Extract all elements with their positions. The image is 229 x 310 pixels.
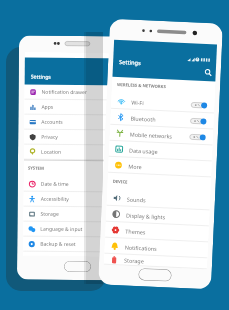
button[interactable]: Language & input [23, 221, 130, 237]
button[interactable]: Data usage [109, 141, 212, 161]
staticText: Data usage [129, 147, 212, 157]
staticText: WIRELESS & NETWORKS [117, 82, 166, 90]
staticText: Privacy [41, 134, 58, 141]
staticText: Settings [119, 58, 141, 67]
staticText: Settings [31, 73, 52, 80]
staticText: Themes [125, 227, 208, 238]
staticText: Notification drawer [41, 89, 88, 96]
staticText: Notifications [125, 243, 208, 254]
staticText: Display & lights [126, 211, 209, 222]
button[interactable] [191, 100, 206, 110]
button[interactable]: Accounts [24, 114, 131, 130]
staticText: Location [41, 149, 62, 156]
staticText: Bluetooth [130, 115, 191, 124]
button[interactable]: Location [24, 144, 131, 160]
button[interactable]: Home [138, 268, 172, 282]
button[interactable]: Themes [105, 222, 209, 242]
button[interactable]: Apps [24, 99, 131, 115]
staticText: Mobile networks [130, 131, 190, 140]
staticText: Backup & reset [40, 241, 76, 248]
button[interactable]: Privacy [24, 129, 131, 145]
staticText: DEVICE [113, 179, 128, 186]
button[interactable]: Date & time [24, 176, 131, 192]
staticText: Sounds [127, 195, 210, 206]
staticText: Accessibility [41, 196, 70, 203]
button[interactable]: Storage [23, 206, 130, 222]
button[interactable]: Backup & reset [23, 236, 130, 252]
button[interactable]: Storage [104, 254, 207, 269]
button[interactable]: Notification drawer [24, 84, 132, 100]
button[interactable] [190, 132, 205, 142]
button[interactable]: Mobile networks [110, 125, 213, 145]
staticText: SYSTEM [28, 166, 44, 172]
button[interactable] [190, 116, 206, 126]
button[interactable]: Sounds [107, 190, 210, 210]
button[interactable]: More [108, 157, 212, 177]
button[interactable]: Notifications [104, 238, 208, 258]
button[interactable]: Display & lights [106, 206, 209, 226]
button[interactable]: Bluetooth [110, 109, 214, 129]
staticText: Accounts [41, 119, 63, 126]
staticText: Apps [41, 104, 53, 111]
staticText: Storage [124, 256, 207, 267]
staticText: Language & input [40, 226, 82, 233]
staticText: Storage [40, 211, 60, 218]
button[interactable]: Search [202, 67, 213, 77]
button[interactable]: Accessibility [24, 191, 131, 207]
staticText: Date & time [41, 181, 69, 188]
button[interactable]: Home [64, 261, 91, 272]
button[interactable]: Wi-Fi [111, 93, 215, 113]
staticText: Wi-Fi [131, 99, 191, 108]
staticText: More [128, 163, 211, 173]
